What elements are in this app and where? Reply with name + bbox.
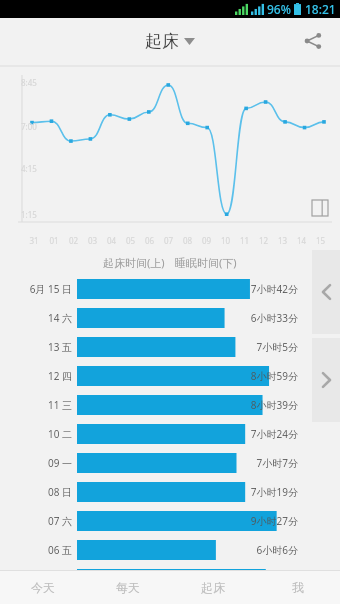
staticText: 7小时24分 (238, 427, 298, 441)
staticText: 6月 15 日 (0, 282, 72, 296)
staticText: 今天 (31, 580, 55, 595)
staticText: 03 (83, 235, 102, 246)
staticText: 4:15 (21, 163, 37, 174)
button[interactable]: 13 五 (0, 332, 340, 361)
button[interactable]: 06 五 (0, 535, 340, 564)
button[interactable]: 起床 (137, 27, 203, 56)
staticText: 1:15 (21, 209, 37, 220)
staticText: 7:00 (21, 121, 37, 132)
staticText: 8小时59分 (238, 369, 298, 383)
staticText: 06 五 (0, 543, 72, 557)
staticText: 07 六 (0, 514, 72, 528)
staticText: 13 (273, 235, 292, 246)
staticText: 11 (235, 235, 254, 246)
staticText: 起床时间(上) (103, 255, 165, 270)
button[interactable]: 11 三 (0, 390, 340, 419)
staticText: 7小时5分 (238, 340, 298, 354)
staticText: 起床 (201, 580, 225, 595)
staticText: 7小时19分 (238, 485, 298, 499)
button[interactable]: 05 四 (0, 564, 340, 593)
button[interactable]: 每天 (85, 571, 170, 604)
staticText: 04 (102, 235, 121, 246)
staticText: 14 (292, 235, 311, 246)
button[interactable]: 6月 15 日 (0, 274, 340, 303)
staticText: 每天 (116, 580, 140, 595)
staticText: 01 (44, 235, 64, 246)
staticText: 10 (216, 235, 235, 246)
staticText: 我 (292, 580, 304, 595)
staticText: 05 (121, 235, 140, 246)
button[interactable]: 08 日 (0, 477, 340, 506)
staticText: 18:21 (305, 1, 336, 17)
button[interactable]: 起床 (170, 571, 255, 604)
staticText: 13 五 (0, 340, 72, 354)
button[interactable]: 07 六 (0, 506, 340, 535)
button[interactable]: Toggle view (311, 199, 329, 217)
button[interactable]: 今天 (0, 571, 85, 604)
staticText: 6小时33分 (238, 311, 298, 325)
button[interactable]: Share (296, 24, 330, 58)
staticText: 06 (140, 235, 159, 246)
staticText: 10 二 (0, 427, 72, 441)
button[interactable]: 14 六 (0, 303, 340, 332)
button[interactable]: Next (312, 338, 340, 422)
staticText: 6小时6分 (238, 543, 298, 557)
staticText: 08 (178, 235, 197, 246)
button[interactable]: 12 四 (0, 361, 340, 390)
staticText: 睡眠时间(下) (175, 255, 237, 270)
staticText: 31 (24, 235, 44, 246)
staticText: 起床 (145, 31, 179, 52)
staticText: 9小时27分 (238, 514, 298, 528)
staticText: 15 (311, 235, 330, 246)
staticText: 12 (254, 235, 273, 246)
button[interactable]: 我 (255, 571, 340, 604)
staticText: 14 六 (0, 311, 72, 325)
staticText: 08 日 (0, 485, 72, 499)
button[interactable]: Previous (312, 250, 340, 334)
staticText: 7小时7分 (238, 456, 298, 470)
staticText: 7小时42分 (238, 282, 298, 296)
staticText: 8小时21分 (238, 572, 298, 586)
staticText: 07 (159, 235, 178, 246)
staticText: 05 四 (0, 572, 72, 586)
staticText: 09 一 (0, 456, 72, 470)
staticText: 12 四 (0, 369, 72, 383)
staticText: 96% (267, 1, 291, 17)
button[interactable]: 09 一 (0, 448, 340, 477)
staticText: 02 (64, 235, 83, 246)
staticText: 09 (197, 235, 216, 246)
button[interactable]: 10 二 (0, 419, 340, 448)
staticText: 8:45 (21, 77, 37, 88)
staticText: 11 三 (0, 398, 72, 412)
staticText: 8小时39分 (238, 398, 298, 412)
